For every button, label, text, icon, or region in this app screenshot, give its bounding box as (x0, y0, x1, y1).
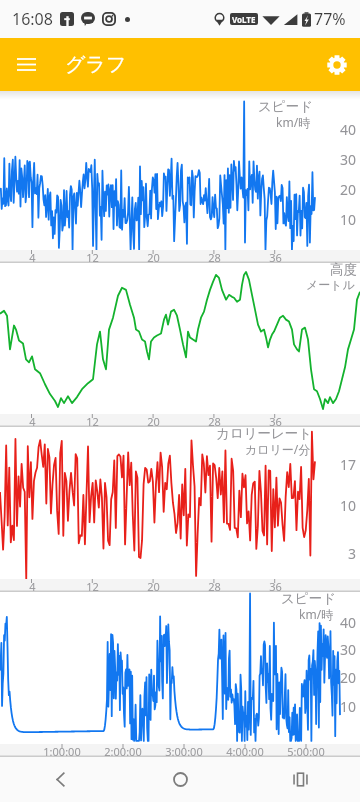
staticText: 1:00:00 (43, 744, 81, 757)
staticText: 12 (86, 250, 99, 263)
button[interactable]: Settings (314, 38, 360, 91)
button[interactable]: Menu (0, 38, 53, 91)
staticText: 28 (208, 579, 221, 592)
button[interactable]: Home (120, 757, 240, 802)
staticText: VoLTE (232, 14, 256, 25)
staticText: 5:00:00 (287, 744, 325, 757)
staticText: 4 (29, 414, 36, 427)
staticText: 17 (340, 455, 357, 474)
staticText: 12 (86, 414, 99, 427)
staticText: 20 (340, 668, 357, 687)
staticText: 4:00:00 (226, 744, 264, 757)
staticText: 30 (340, 150, 357, 169)
staticText: 77% (314, 8, 346, 30)
staticText: 4 (29, 250, 36, 263)
button[interactable]: Recent apps (240, 757, 360, 802)
staticText: 3:00:00 (165, 744, 203, 757)
staticText: 10 (340, 210, 357, 229)
staticText: 20 (340, 180, 357, 199)
staticText: 20 (147, 579, 160, 592)
staticText: 12 (86, 579, 99, 592)
staticText: 高度 (330, 261, 357, 278)
staticText: メートル (306, 277, 355, 292)
staticText: 2:00:00 (104, 744, 142, 757)
staticText: 30 (340, 640, 357, 659)
button[interactable]: Back (0, 757, 120, 802)
staticText: カロリー/分 (245, 441, 311, 457)
staticText: スピード (281, 590, 336, 607)
staticText: 20 (147, 250, 160, 263)
staticText: グラフ (65, 52, 127, 77)
staticText: km/時 (276, 114, 311, 130)
staticText: 40 (340, 120, 357, 139)
staticText: 36 (269, 414, 282, 427)
staticText: 40 (340, 613, 357, 632)
staticText: 10 (340, 697, 357, 716)
staticText: 10 (340, 496, 357, 515)
staticText: 20 (147, 414, 160, 427)
staticText: 4 (29, 579, 36, 592)
staticText: 36 (269, 250, 282, 263)
staticText: 28 (208, 414, 221, 427)
staticText: 36 (269, 579, 282, 592)
staticText: km/時 (299, 606, 334, 622)
staticText: 16:08 (12, 8, 53, 30)
staticText: スピード (258, 98, 313, 115)
staticText: カロリーレート (216, 425, 313, 442)
staticText: 3 (348, 544, 357, 563)
staticText: 28 (208, 250, 221, 263)
